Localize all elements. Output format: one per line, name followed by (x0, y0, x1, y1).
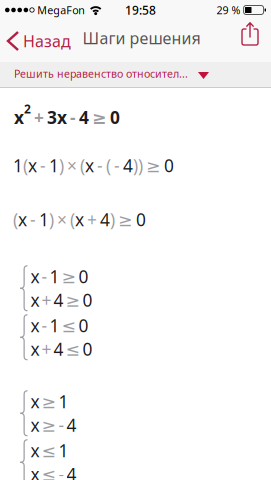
staticText: (x - 1) × (x + 4) ≥ 0 (13, 208, 146, 231)
staticText: x - 1 ≤ 0 (30, 314, 88, 337)
staticText: 19:58 (125, 2, 156, 18)
staticText: 29 % (217, 3, 241, 17)
staticText: x - 1 ≥ 0 (30, 265, 88, 288)
staticText: x ≥ - 4 (30, 413, 76, 436)
staticText: x ≤ 1 (30, 439, 68, 462)
staticText: MegaFon (37, 3, 85, 17)
button[interactable]: Решить неравенство относител... (0, 62, 271, 88)
staticText: x + 4 ≥ 0 (30, 288, 92, 311)
staticText: x2 + 3x - 4 ≥ 0 (14, 101, 120, 129)
staticText: x ≤ - 4 (30, 462, 76, 480)
button[interactable]: Share (240, 29, 271, 53)
staticText: x ≥ 1 (30, 390, 68, 413)
staticText: Шаги решения (82, 27, 200, 49)
staticText: Назад (23, 30, 71, 52)
button[interactable]: Back (0, 30, 71, 52)
staticText: x + 4 ≤ 0 (30, 337, 92, 360)
staticText: Решить неравенство относител... (14, 66, 188, 81)
staticText: 1(x - 1) × (x - ( - 4)) ≥ 0 (13, 154, 174, 177)
